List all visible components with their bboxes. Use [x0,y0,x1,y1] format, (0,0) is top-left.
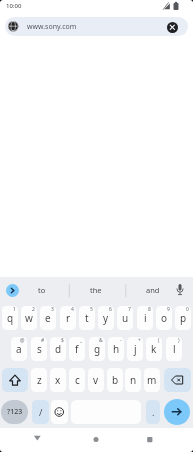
button[interactable] [86,429,107,447]
button[interactable] [139,429,160,447]
staticText: h [113,342,120,356]
staticText: ?123 [7,407,23,417]
button[interactable]: t [79,306,95,330]
staticText: 8 [148,306,151,313]
button[interactable]: z [31,368,47,392]
staticText: + [138,337,141,344]
staticText: e [45,311,51,325]
button[interactable]: s [31,337,47,361]
staticText: y [103,311,109,325]
button[interactable]: k [146,337,162,361]
staticText: ( [158,337,160,344]
button[interactable] [5,17,188,36]
staticText: the [90,285,102,295]
button[interactable]: . [146,400,160,424]
button[interactable]: j [127,337,143,361]
staticText: z [37,373,42,387]
staticText: w [25,311,33,325]
staticText: and [146,285,160,295]
staticText: / [39,406,43,418]
button[interactable]: n [125,368,141,392]
staticText: _ [80,337,83,344]
staticText: m [147,373,157,387]
staticText: 2 [32,306,35,313]
button[interactable]: h [108,337,124,361]
button[interactable] [173,282,187,298]
button[interactable]: the [76,281,116,299]
staticText: c [75,373,80,387]
staticText: 10:00 [6,2,22,10]
button[interactable]: d [50,337,66,361]
staticText: x [55,373,61,387]
staticText: b [112,373,119,387]
button[interactable]: b [107,368,123,392]
button[interactable] [51,400,68,424]
staticText: - [120,337,122,344]
button[interactable]: r [60,306,76,330]
button[interactable]: i [137,306,153,330]
button[interactable]: c [69,368,85,392]
button[interactable]: m [144,368,160,392]
staticText: a [16,342,22,356]
button[interactable]: / [32,400,49,424]
staticText: @ [20,337,25,344]
button[interactable]: v [88,368,104,392]
staticText: 6 [109,306,112,313]
staticText: 7 [128,306,131,313]
staticText: 0 [186,306,189,313]
staticText: . [152,406,155,418]
button[interactable] [27,429,48,447]
button[interactable]: y [98,306,114,330]
button[interactable]: q [2,306,18,330]
button[interactable]: g [89,337,105,361]
staticText: o [161,311,168,325]
staticText: p [180,311,187,325]
staticText: v [93,373,99,387]
button[interactable]: ?123 [1,400,28,424]
button[interactable] [164,399,190,425]
button[interactable]: l [166,337,182,361]
staticText: g [94,342,101,356]
button[interactable] [6,284,19,297]
staticText: u [122,311,129,325]
staticText: s [37,342,42,356]
button[interactable]: e [40,306,56,330]
staticText: k [151,342,157,356]
button[interactable]: x [50,368,66,392]
staticText: d [55,342,62,356]
button[interactable]: and [133,281,173,299]
staticText: $ [61,337,64,344]
staticText: i [144,311,147,325]
staticText: t [85,311,89,325]
staticText: 1 [13,306,16,313]
button[interactable] [2,368,28,392]
staticText: n [130,373,137,387]
button[interactable]: a [11,337,27,361]
button[interactable]: p [175,306,191,330]
button[interactable] [164,368,191,392]
staticText: 4 [71,306,74,313]
button[interactable]: to [22,281,62,299]
staticText: l [173,342,176,356]
button[interactable]: f [69,337,85,361]
button[interactable] [167,22,178,33]
staticText: q [7,311,14,325]
staticText: f [75,342,79,356]
staticText: # [41,337,45,344]
staticText: & [99,337,103,344]
staticText: to [38,285,46,295]
staticText: ) [178,337,180,344]
button[interactable]: u [117,306,133,330]
staticText: www.sony.com [27,22,77,32]
button[interactable]: w [21,306,37,330]
staticText: 3 [51,306,54,313]
staticText: r [66,311,71,325]
staticText: 9 [167,306,170,313]
button[interactable]: o [156,306,172,330]
staticText: j [134,342,137,356]
staticText: 5 [90,306,93,313]
